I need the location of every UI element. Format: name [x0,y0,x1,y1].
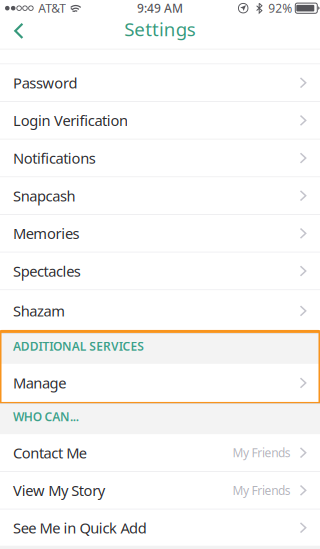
staticText: 9:49 AM [137,0,183,16]
staticText: Spectacles [13,261,81,281]
staticText: Password [13,73,78,92]
staticText: Memories [13,224,80,243]
staticText: WHO CAN... [13,409,79,425]
staticText: See Me in Quick Add [13,518,147,537]
staticText: Login Verification [13,111,128,130]
staticText: Contact Me [13,443,87,462]
staticText: View My Story [13,481,105,500]
staticText: Notifications [13,148,96,168]
button[interactable]: Manage [0,364,320,402]
button[interactable]: Shazam [0,290,320,331]
staticText: Settings [124,17,196,41]
staticText: AT&T [38,0,66,16]
button[interactable]: Snapcash [0,177,320,214]
staticText: 92% [268,0,292,16]
button[interactable]: Notifications [0,140,320,176]
button[interactable]: Contact Me [0,434,320,471]
button[interactable]: Back [0,18,44,49]
staticText: ADDITIONAL SERVICES [13,338,144,354]
button[interactable]: Login Verification [0,102,320,139]
button[interactable]: Spectacles [0,253,320,289]
button[interactable]: Memories [0,215,320,252]
staticText: Snapcash [13,186,76,205]
staticText: My Friends [232,445,291,461]
staticText: Shazam [13,301,65,321]
button[interactable]: View My Story [0,472,320,509]
staticText: Manage [13,373,66,393]
button[interactable]: See Me in Quick Add [0,510,320,546]
button[interactable]: Password [0,64,320,101]
staticText: My Friends [232,482,291,498]
